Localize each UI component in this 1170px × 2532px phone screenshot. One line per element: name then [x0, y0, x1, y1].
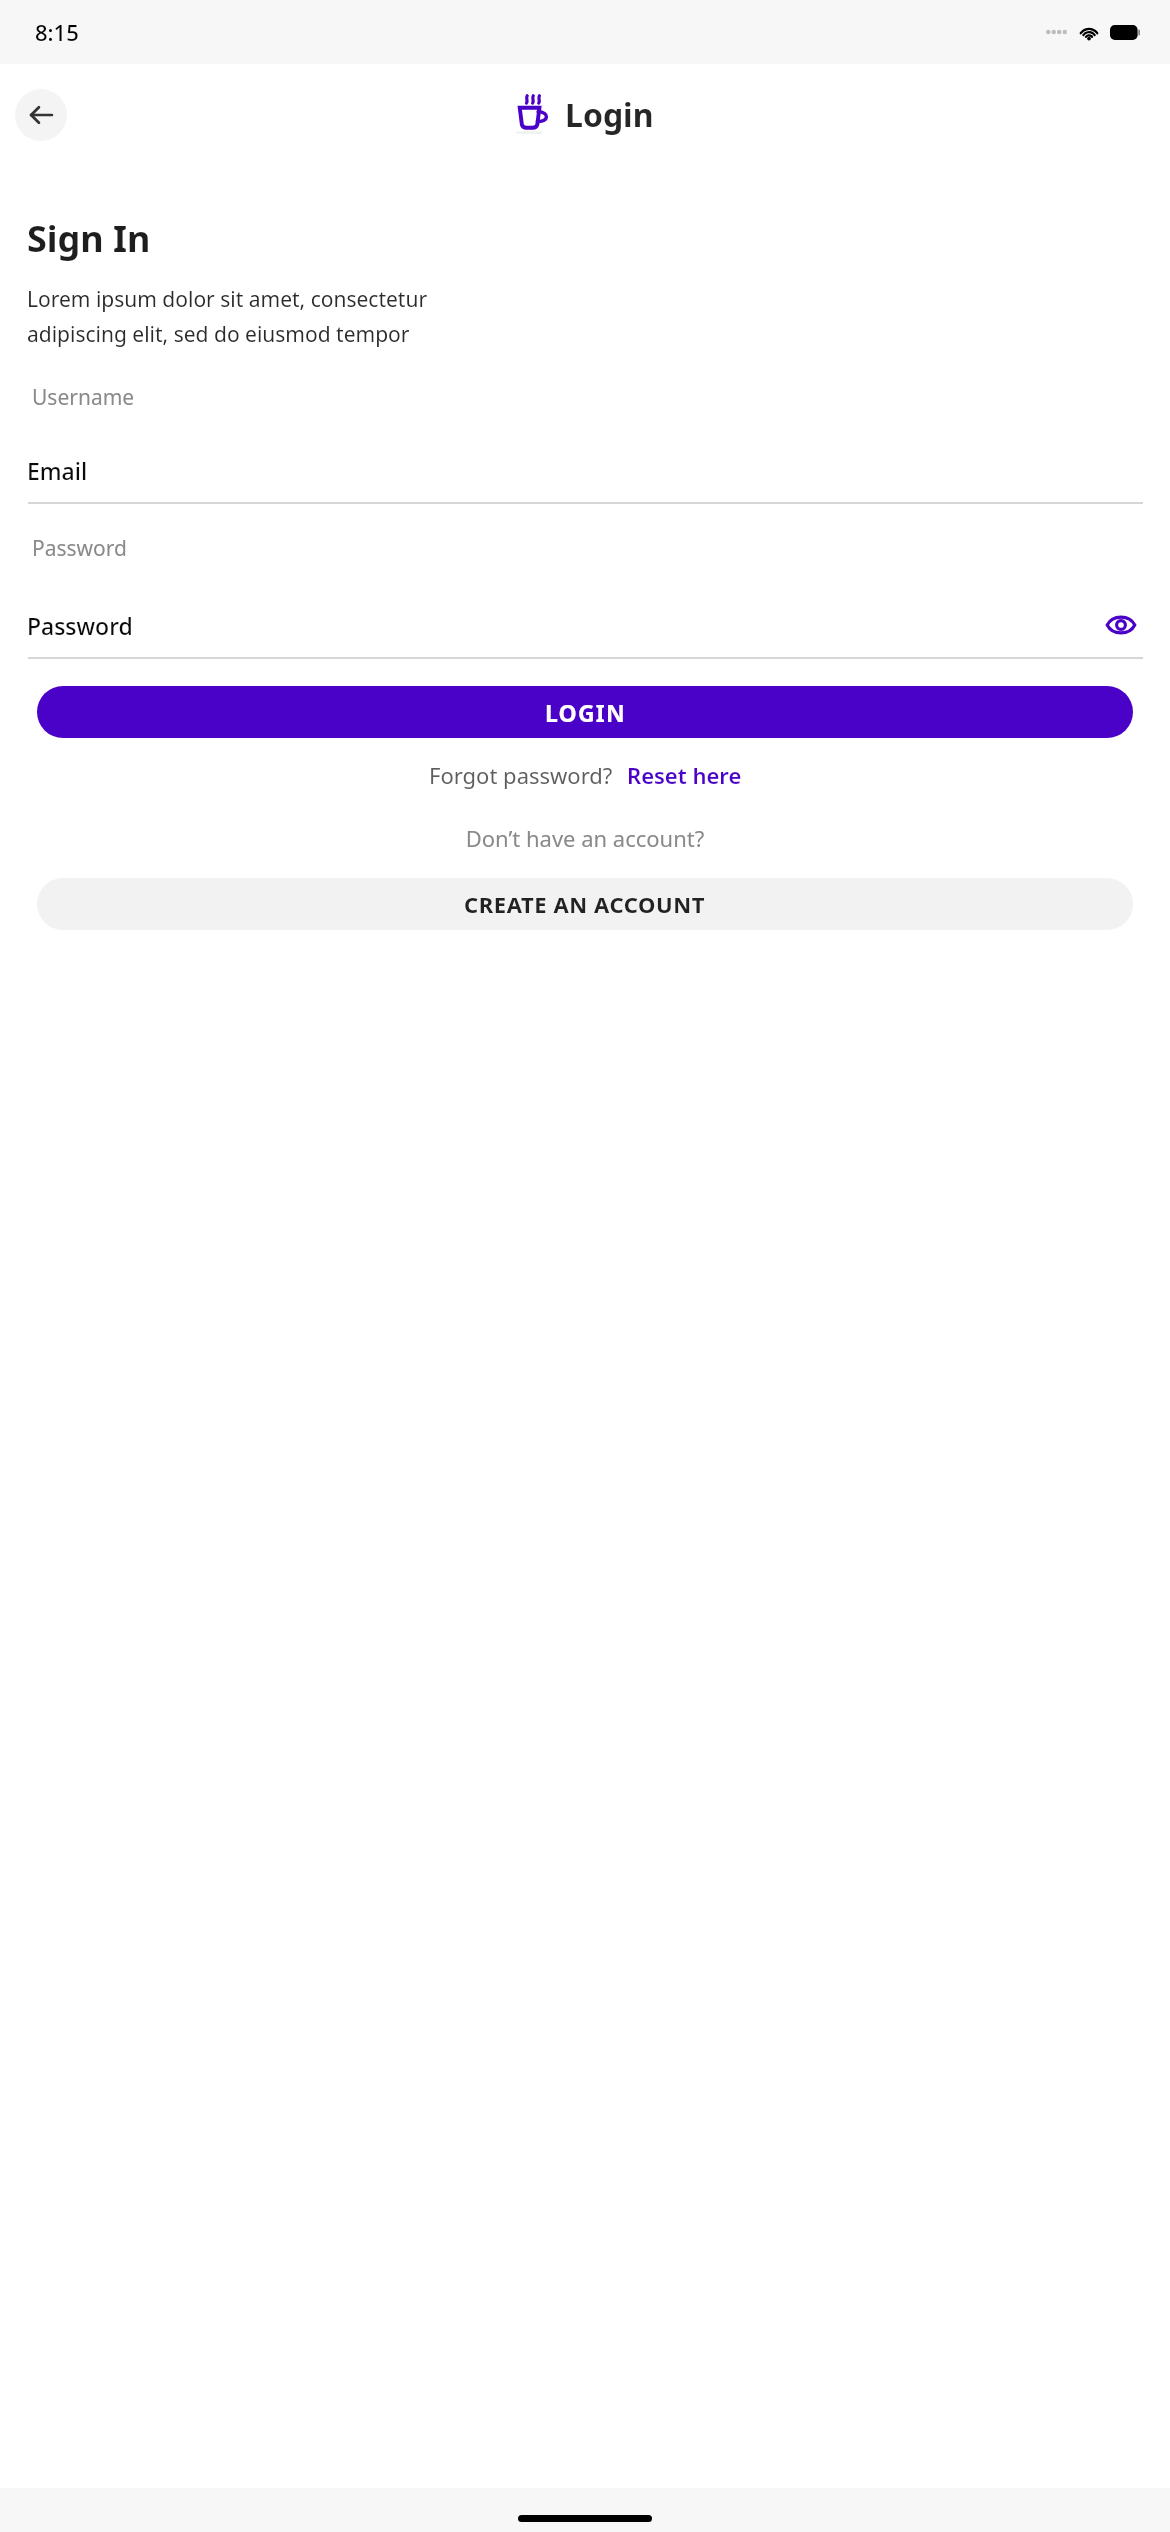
- staticText: Username: [32, 383, 135, 412]
- staticText: CREATE AN ACCOUNT: [464, 889, 706, 919]
- staticText: Password: [27, 610, 133, 641]
- button[interactable]: Reset here: [627, 760, 742, 790]
- staticText: Lorem ipsum dolor sit amet, consectetur …: [27, 285, 428, 349]
- staticText: Sign In: [27, 214, 151, 263]
- button[interactable]: Show password: [1099, 603, 1143, 647]
- staticText: Don’t have an account?: [27, 823, 1143, 853]
- staticText: Reset here: [627, 760, 742, 790]
- button[interactable]: Back: [15, 89, 67, 141]
- button[interactable]: LOGIN: [37, 686, 1133, 738]
- staticText: Email: [27, 455, 88, 486]
- button[interactable]: CREATE AN ACCOUNT: [37, 878, 1133, 930]
- staticText: Password: [32, 534, 127, 563]
- staticText: 8:15: [35, 17, 79, 47]
- button[interactable]: Username: [27, 383, 1143, 504]
- staticText: LOGIN: [545, 697, 626, 728]
- staticText: Login: [565, 93, 654, 137]
- staticText: Forgot password?: [429, 760, 613, 790]
- button[interactable]: Password: [27, 534, 1143, 659]
